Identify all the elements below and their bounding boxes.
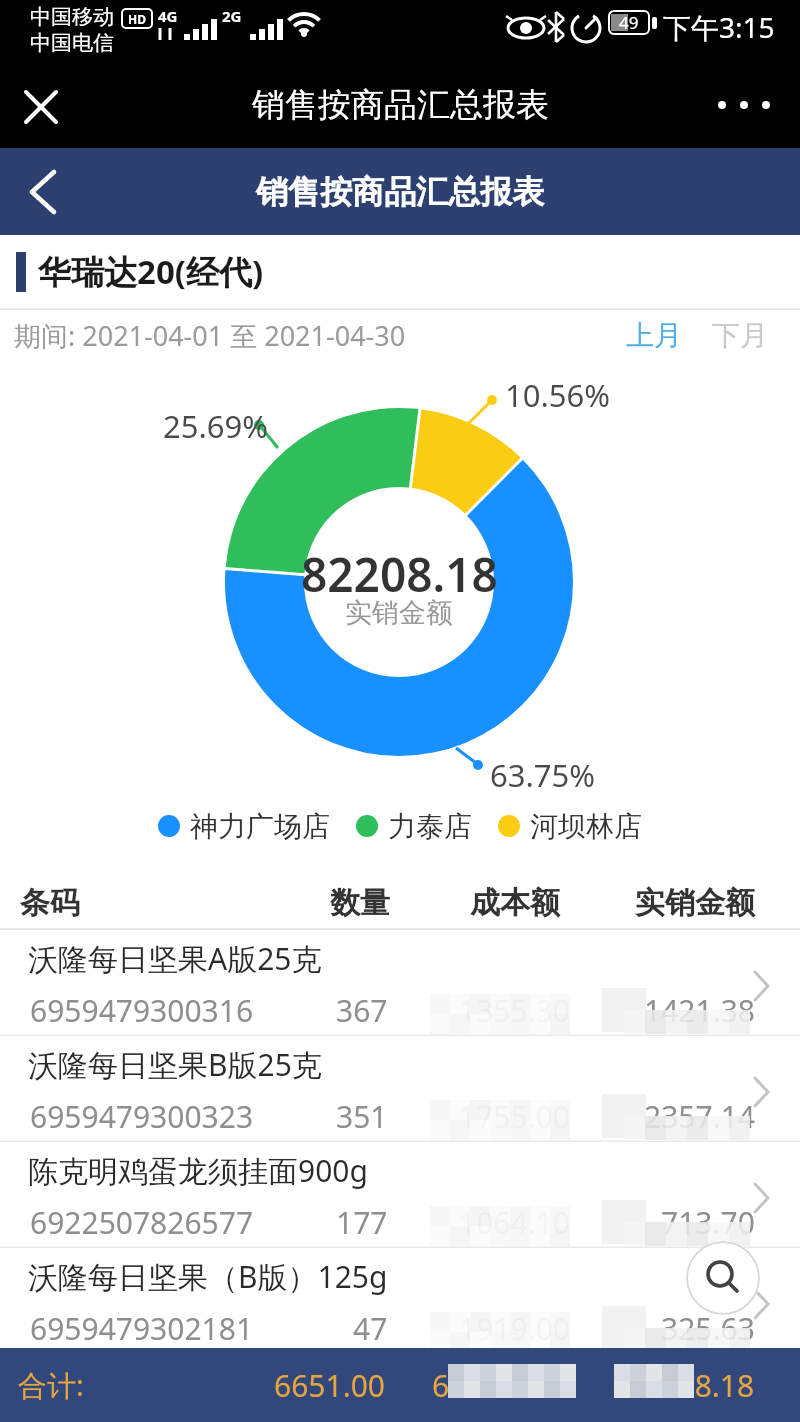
staticText: 63.75%: [490, 754, 595, 796]
staticText: 沃隆每日坚果B版25克: [28, 1044, 322, 1085]
staticText: 沃隆每日坚果A版25克: [28, 938, 322, 979]
staticText: 1755.00: [459, 1096, 570, 1137]
button[interactable]: [686, 1241, 760, 1315]
button[interactable]: 陈克明鸡蛋龙须挂面900g: [0, 1142, 800, 1248]
staticText: 713.70: [661, 1202, 755, 1243]
staticText: 期间: 2021-04-01 至 2021-04-30: [14, 317, 406, 354]
button[interactable]: 沃隆每日坚果B版25克: [0, 1036, 800, 1142]
staticText: 河坝林店: [530, 809, 642, 844]
button[interactable]: 下月: [712, 318, 768, 353]
button[interactable]: 沃隆每日坚果（B版）125g: [0, 1248, 800, 1354]
staticText: 6922507826577: [30, 1202, 254, 1243]
staticText: 47: [353, 1308, 388, 1349]
staticText: 陈克明鸡蛋龙须挂面900g: [28, 1150, 368, 1191]
staticText: 1064.10: [459, 1202, 570, 1243]
button[interactable]: [12, 92, 68, 148]
staticText: 数量: [330, 884, 390, 922]
staticText: 条码: [20, 884, 80, 922]
staticText: 1421.38: [644, 990, 755, 1031]
staticText: 华瑞达20(经代): [38, 249, 264, 294]
staticText: 销售按商品汇总报表: [252, 84, 549, 126]
staticText: HD: [128, 11, 146, 27]
staticText: 2357.14: [644, 1096, 755, 1137]
staticText: 367: [336, 990, 388, 1031]
button[interactable]: 上月: [626, 318, 682, 353]
staticText: 2G: [222, 6, 242, 26]
button[interactable]: [720, 65, 800, 145]
staticText: 25.69%: [163, 405, 268, 447]
staticText: 中国电信: [30, 30, 114, 56]
staticText: 6959479300323: [30, 1096, 254, 1137]
staticText: 神力广场店: [190, 809, 330, 844]
staticText: 351: [336, 1096, 388, 1137]
staticText: 上月: [626, 318, 682, 353]
staticText: 82208.18: [626, 1365, 755, 1406]
staticText: 销售按商品汇总报表: [256, 172, 544, 212]
staticText: 82208.18: [301, 543, 498, 599]
staticText: 1919.00: [459, 1308, 570, 1349]
staticText: 沃隆每日坚果（B版）125g: [28, 1256, 388, 1297]
staticText: 62154.30: [432, 1365, 561, 1406]
staticText: 下月: [712, 318, 768, 353]
staticText: 成本额: [470, 884, 560, 922]
staticText: 力泰店: [388, 809, 472, 844]
staticText: 实销金额: [345, 596, 453, 628]
button[interactable]: 沃隆每日坚果A版25克: [0, 930, 800, 1036]
staticText: 中国移动: [30, 4, 114, 30]
staticText: 4G: [158, 6, 178, 26]
staticText: 1355.30: [459, 990, 570, 1031]
staticText: 下午3:15: [663, 8, 775, 46]
staticText: 10.56%: [505, 374, 610, 416]
staticText: 合计:: [18, 1365, 84, 1405]
staticText: 6959479302181: [30, 1308, 254, 1349]
staticText: 177: [336, 1202, 388, 1243]
staticText: 6651.00: [274, 1365, 385, 1406]
button[interactable]: [14, 162, 74, 222]
staticText: 325.63: [661, 1308, 755, 1349]
staticText: 实销金额: [635, 884, 755, 922]
staticText: 6959479300316: [30, 990, 254, 1031]
staticText: 49: [619, 11, 639, 34]
